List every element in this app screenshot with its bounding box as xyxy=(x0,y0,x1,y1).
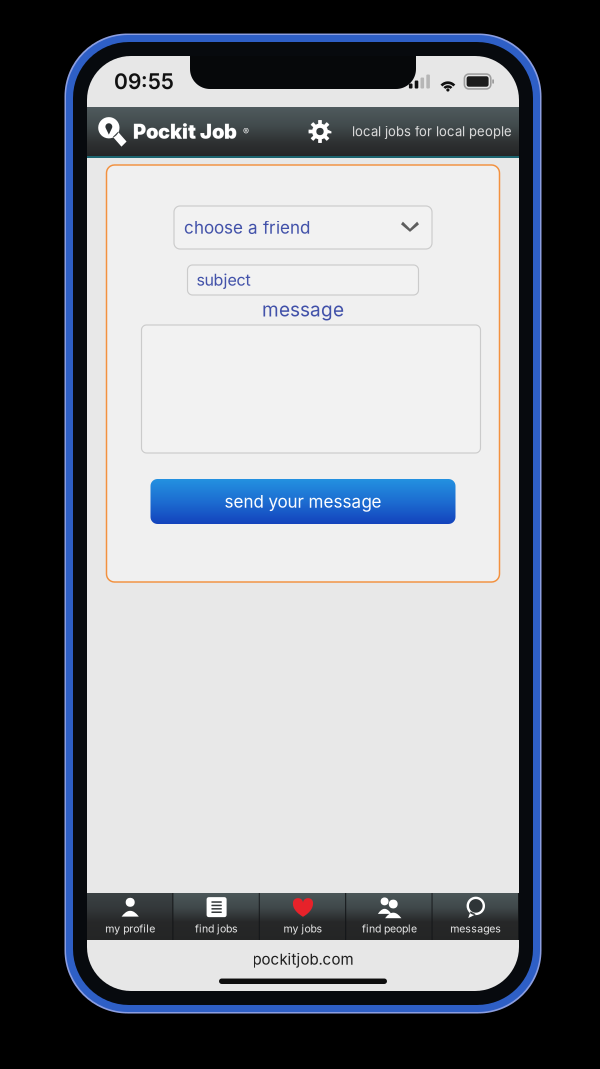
button[interactable]: subject xyxy=(187,265,418,295)
staticText: subject xyxy=(196,270,250,290)
staticText: choose a friend xyxy=(184,217,310,238)
button[interactable]: my profile xyxy=(87,893,173,940)
staticText: send your message xyxy=(224,491,381,512)
button[interactable]: find people xyxy=(346,893,433,940)
button[interactable]: send your message xyxy=(150,479,455,524)
staticText: 09:55 xyxy=(114,69,174,94)
staticText: pockitjob.com xyxy=(252,950,353,968)
staticText: my profile xyxy=(105,922,155,935)
button[interactable]: Pockit Job xyxy=(87,107,307,156)
button[interactable]: choose a friend xyxy=(174,206,432,249)
staticText: find people xyxy=(362,922,417,935)
staticText: messages xyxy=(450,922,501,935)
button[interactable]: Settings xyxy=(307,107,333,156)
button[interactable]: messages xyxy=(433,893,519,940)
staticText: my jobs xyxy=(283,922,322,935)
staticText: ® xyxy=(243,126,249,137)
button[interactable]: my jobs xyxy=(260,893,346,940)
staticText: Pockit Job xyxy=(133,119,237,144)
staticText: local jobs for local people xyxy=(352,124,512,139)
staticText: find jobs xyxy=(195,922,238,935)
button[interactable]: find jobs xyxy=(173,893,260,940)
staticText: message xyxy=(262,298,344,321)
